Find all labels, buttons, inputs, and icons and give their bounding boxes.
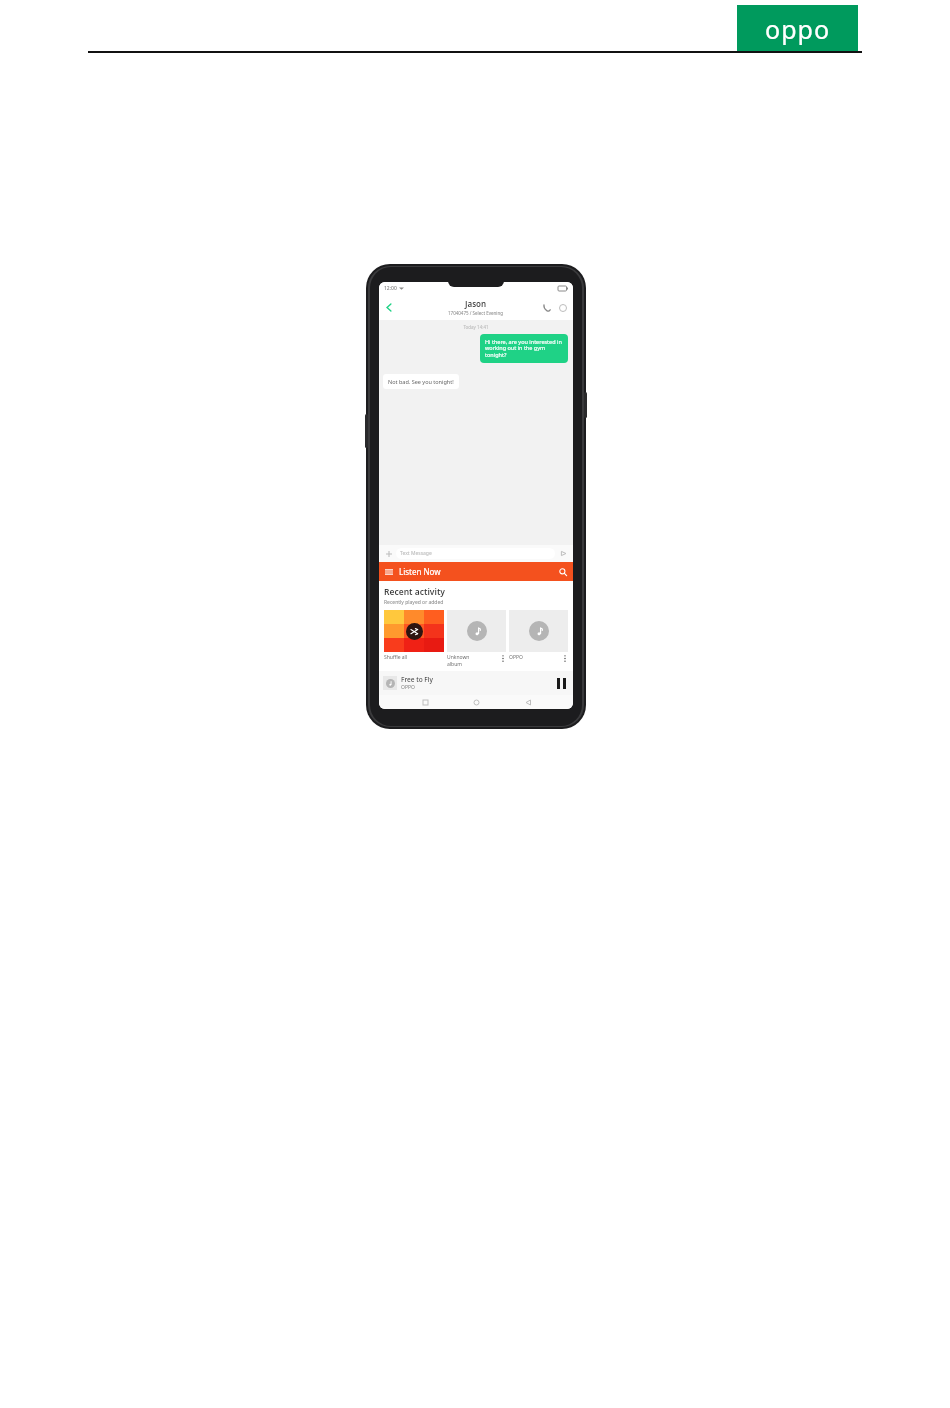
button[interactable]: Search [556, 565, 569, 578]
button[interactable]: Hi there, are you interested in working … [480, 334, 568, 363]
button[interactable]: Not bad. See you tonight! [383, 374, 459, 389]
staticText: Recently played or added [384, 599, 444, 606]
button[interactable]: Pause [553, 675, 569, 691]
staticText: Shuffle all [384, 654, 408, 661]
staticText: OPPO [401, 684, 415, 691]
staticText: Hi there, are you interested in working … [485, 338, 563, 359]
staticText: OPPO [509, 654, 561, 661]
staticText: 12:00 [384, 285, 397, 292]
button[interactable]: Home [470, 696, 482, 708]
button[interactable]: Open navigation menu [382, 565, 396, 579]
button[interactable]: More options for OPPO [561, 654, 568, 663]
staticText: 17040475 / Select Evening [448, 310, 504, 316]
staticText: Today 14:41 [379, 324, 573, 330]
button[interactable]: Back [522, 696, 534, 708]
staticText: Free to Fly [401, 675, 433, 684]
button[interactable]: More options for Unknown album [499, 654, 506, 663]
staticText: oppo [765, 12, 831, 46]
button[interactable]: OPPO [509, 610, 568, 663]
button[interactable]: Send [558, 548, 569, 559]
button[interactable]: Contact info [556, 301, 569, 314]
button[interactable]: Free to Fly [379, 671, 573, 695]
button[interactable]: Text Message [396, 548, 555, 559]
staticText: Unknown album [447, 654, 499, 667]
button[interactable]: Shuffle all [384, 610, 444, 661]
button[interactable]: Back [383, 301, 395, 313]
button[interactable]: Call [540, 301, 553, 314]
staticText: Not bad. See you tonight! [388, 378, 454, 385]
button[interactable]: Recents [419, 696, 431, 708]
staticText: Text Message [400, 550, 432, 557]
staticText: Recent activity [384, 586, 446, 598]
staticText: Jason [465, 298, 487, 309]
button[interactable]: OPPO logo [737, 5, 858, 52]
button[interactable]: Unknown album [447, 610, 506, 667]
button[interactable]: Add attachment [383, 548, 394, 559]
staticText: Listen Now [399, 566, 441, 577]
